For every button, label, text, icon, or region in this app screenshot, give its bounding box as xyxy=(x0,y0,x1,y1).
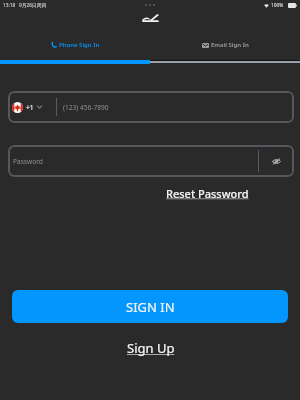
staticText: Phone Sign In xyxy=(59,41,100,49)
staticText: 13:18 xyxy=(3,2,16,9)
staticText: 100% xyxy=(271,2,284,9)
button[interactable]: SIGN IN xyxy=(12,290,288,323)
staticText: Email Sign In xyxy=(211,41,249,49)
button[interactable]: Reset Password xyxy=(165,185,250,202)
button[interactable]: Sign Up xyxy=(126,338,176,358)
staticText: Password xyxy=(13,157,43,166)
button[interactable]: Password xyxy=(8,145,294,177)
staticText: SIGN IN xyxy=(126,298,175,316)
button[interactable]: Phone Sign In xyxy=(0,36,150,54)
button[interactable]: Select country code, +1 Canada xyxy=(8,91,56,123)
staticText: (123) 456-7890 xyxy=(63,103,109,112)
staticText: Sign Up xyxy=(127,339,175,357)
button[interactable]: Show password xyxy=(259,145,294,177)
button[interactable]: Email Sign In xyxy=(150,36,300,54)
button[interactable]: Select country code, +1 Canada xyxy=(8,91,294,123)
staticText: +1 xyxy=(26,103,34,112)
staticText: 9月26日周四 xyxy=(19,2,47,9)
staticText: Reset Password xyxy=(166,186,249,201)
